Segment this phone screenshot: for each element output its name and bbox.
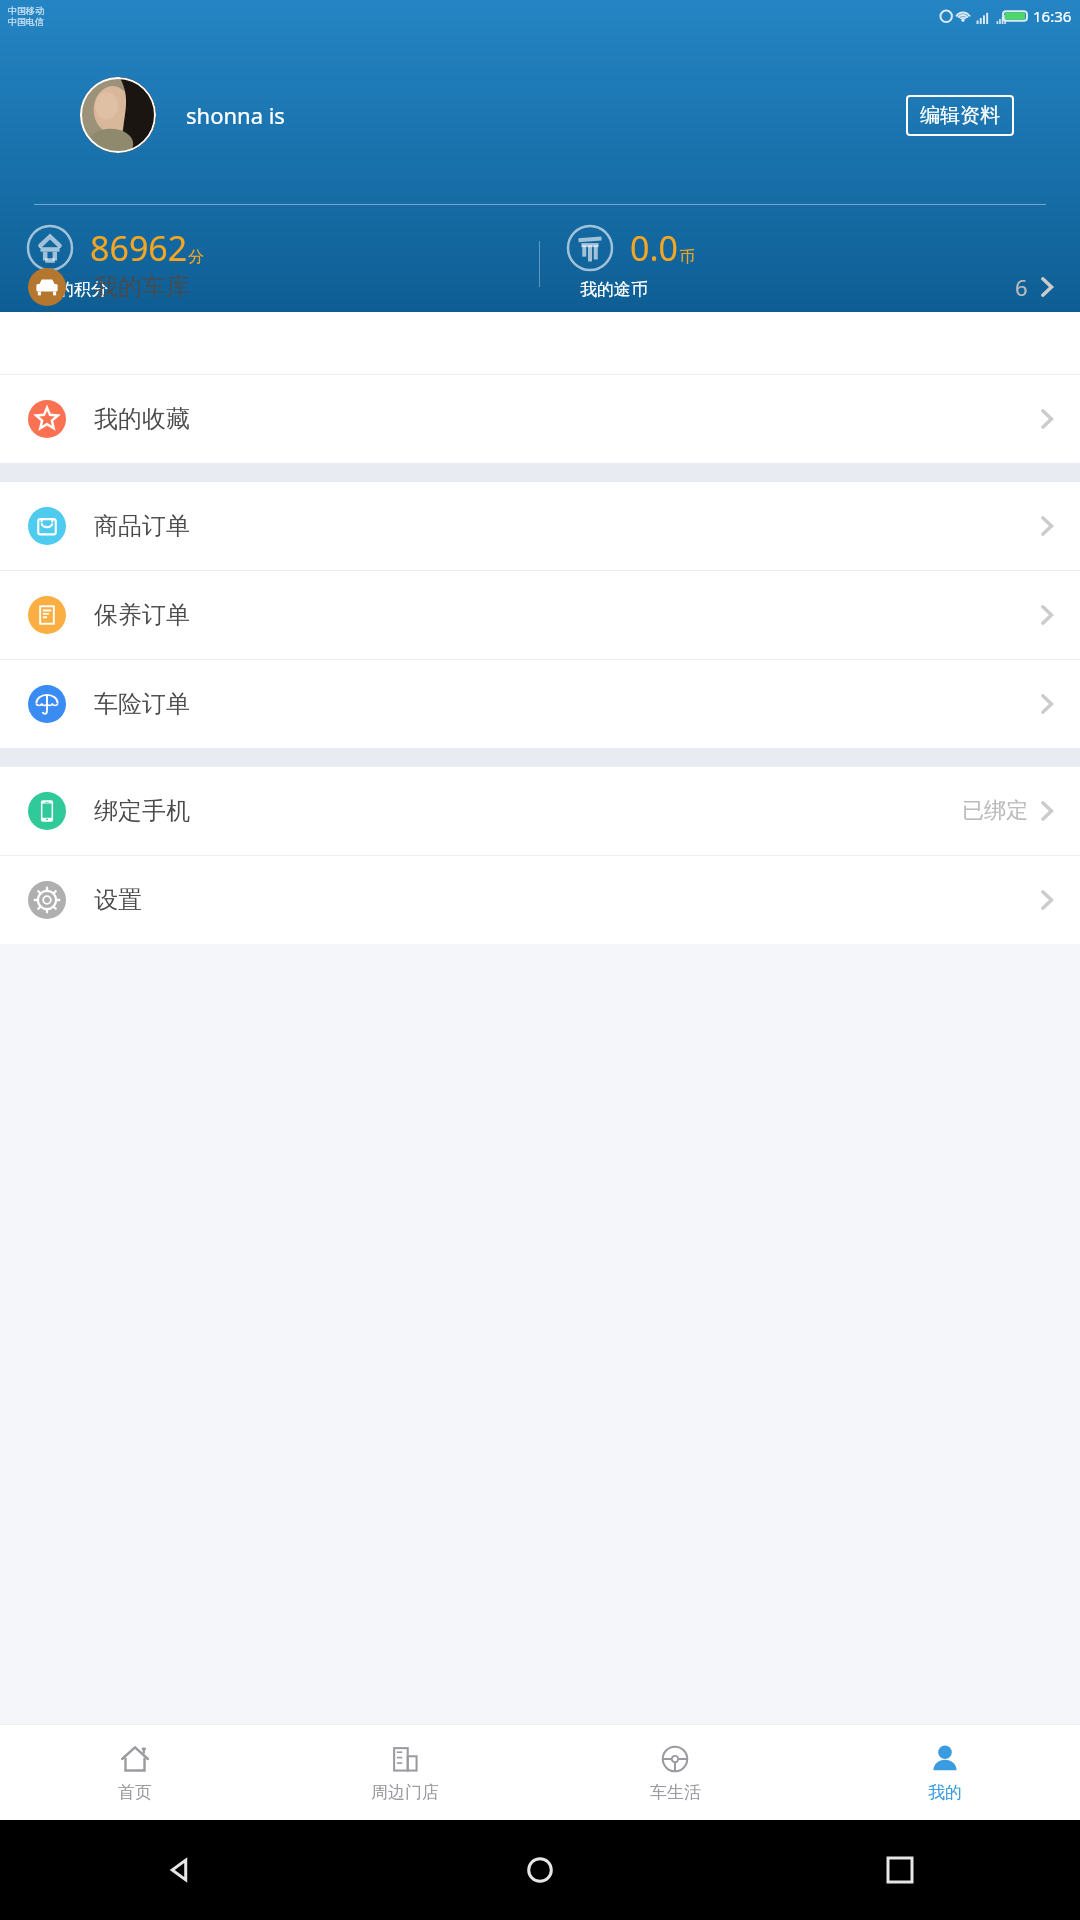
staticText: 绑定手机 bbox=[94, 796, 190, 826]
button[interactable]: 保养订单 bbox=[0, 571, 1080, 659]
staticText: 保养订单 bbox=[94, 600, 190, 630]
other: Recents bbox=[888, 1858, 912, 1882]
staticText: 16:36 bbox=[1033, 6, 1072, 26]
button[interactable]: 我的 bbox=[810, 1724, 1080, 1820]
staticText: 我的 bbox=[928, 1782, 962, 1803]
staticText: 商品订单 bbox=[94, 511, 190, 541]
staticText: 编辑资料 bbox=[920, 103, 1000, 128]
staticText: 车险订单 bbox=[94, 689, 190, 719]
staticText: shonna is bbox=[186, 100, 285, 130]
staticText: 我的车库 bbox=[94, 272, 190, 302]
staticText: 中国移动 bbox=[8, 5, 44, 16]
staticText: 分 bbox=[188, 247, 204, 267]
button[interactable]: 0.0 bbox=[540, 222, 1080, 306]
staticText: 车生活 bbox=[650, 1782, 701, 1803]
button[interactable]: 车险订单 bbox=[0, 660, 1080, 748]
button[interactable]: 86962 bbox=[0, 222, 539, 306]
button[interactable]: 我的收藏 bbox=[0, 375, 1080, 463]
other: Home bbox=[527, 1857, 553, 1883]
button[interactable]: 周边门店 bbox=[270, 1724, 540, 1820]
staticText: 首页 bbox=[118, 1782, 152, 1803]
button[interactable]: 商品订单 bbox=[0, 482, 1080, 570]
button[interactable]: 编辑资料 bbox=[906, 95, 1014, 136]
staticText: 0.0 bbox=[630, 225, 679, 271]
staticText: 已绑定 bbox=[962, 797, 1028, 825]
button[interactable]: 车生活 bbox=[540, 1724, 810, 1820]
staticText: 我的收藏 bbox=[94, 404, 190, 434]
button[interactable]: 绑定手机 bbox=[0, 767, 1080, 855]
button[interactable]: 首页 bbox=[0, 1724, 270, 1820]
staticText: 我的积分 bbox=[40, 279, 108, 300]
staticText: 6 bbox=[1015, 272, 1028, 302]
button[interactable]: Avatar bbox=[80, 77, 156, 153]
staticText: 设置 bbox=[94, 885, 142, 915]
button[interactable]: 设置 bbox=[0, 856, 1080, 944]
staticText: 币 bbox=[679, 247, 695, 267]
staticText: 中国电信 bbox=[8, 16, 44, 27]
staticText: 86962 bbox=[90, 225, 188, 271]
other: Back bbox=[167, 1857, 193, 1883]
staticText: 周边门店 bbox=[371, 1782, 439, 1803]
staticText: 我的途币 bbox=[580, 279, 648, 300]
